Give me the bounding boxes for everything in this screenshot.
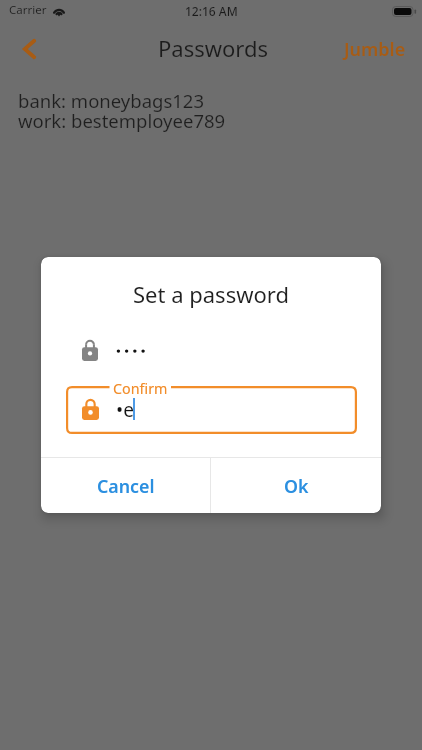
staticText: bank: moneybags123 work: bestemployee789 bbox=[18, 88, 226, 133]
button[interactable]: Cancel bbox=[41, 458, 210, 513]
staticText: Jumble bbox=[344, 37, 406, 62]
staticText: Confirm bbox=[113, 379, 168, 398]
button[interactable]: Jumble bbox=[328, 27, 422, 72]
button[interactable]: Ok bbox=[211, 458, 381, 513]
staticText: Set a password bbox=[41, 279, 381, 309]
staticText: Cancel bbox=[97, 474, 155, 498]
button[interactable]: Back bbox=[7, 27, 51, 71]
staticText: Ok bbox=[284, 474, 309, 498]
staticText: •e bbox=[116, 397, 134, 423]
staticText: Passwords bbox=[158, 33, 269, 63]
staticText: Carrier bbox=[9, 2, 47, 18]
staticText: 12:16 AM bbox=[185, 3, 238, 19]
button[interactable]: Confirm password field bbox=[66, 386, 357, 434]
